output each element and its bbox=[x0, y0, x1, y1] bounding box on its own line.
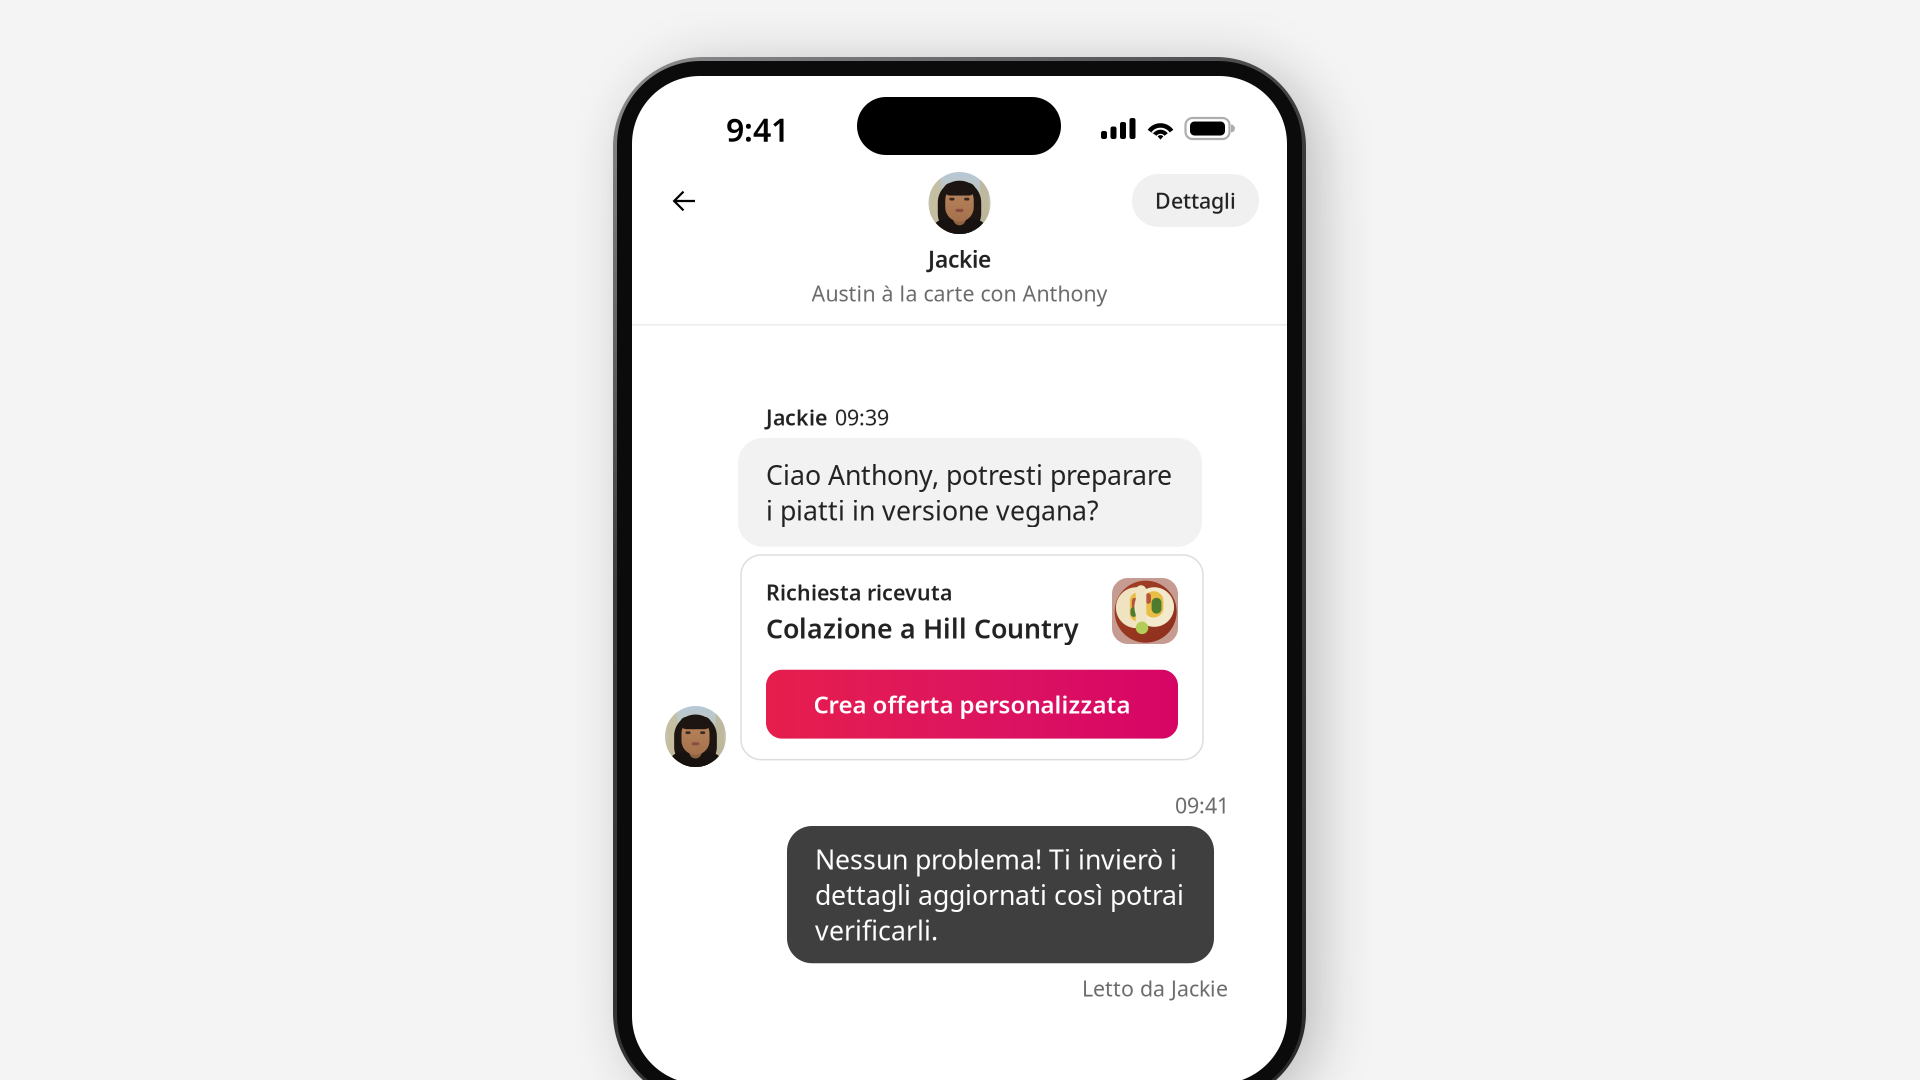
staticText: Letto da Jackie bbox=[1082, 974, 1228, 1002]
button[interactable]: Dettagli bbox=[1132, 174, 1259, 227]
staticText: 09:41 bbox=[1175, 791, 1229, 819]
staticText: 09:39 bbox=[835, 403, 889, 431]
staticText: Dettagli bbox=[1155, 186, 1236, 215]
staticText: Ciao Anthony, potresti preparare i piatt… bbox=[766, 457, 1172, 528]
staticText: Austin à la carte con Anthony bbox=[811, 279, 1107, 307]
button[interactable]: Crea offerta personalizzata bbox=[766, 670, 1178, 739]
staticText: Nessun problema! Ti invierò i dettagli a… bbox=[815, 841, 1184, 948]
staticText: Colazione a Hill Country bbox=[766, 610, 1079, 646]
button[interactable]: Back bbox=[658, 176, 711, 226]
staticText: Crea offerta personalizzata bbox=[813, 688, 1130, 720]
staticText: Jackie bbox=[766, 403, 827, 431]
staticText: 9:41 bbox=[726, 108, 789, 150]
staticText: Jackie bbox=[928, 244, 991, 274]
staticText: Richiesta ricevuta bbox=[766, 578, 952, 606]
